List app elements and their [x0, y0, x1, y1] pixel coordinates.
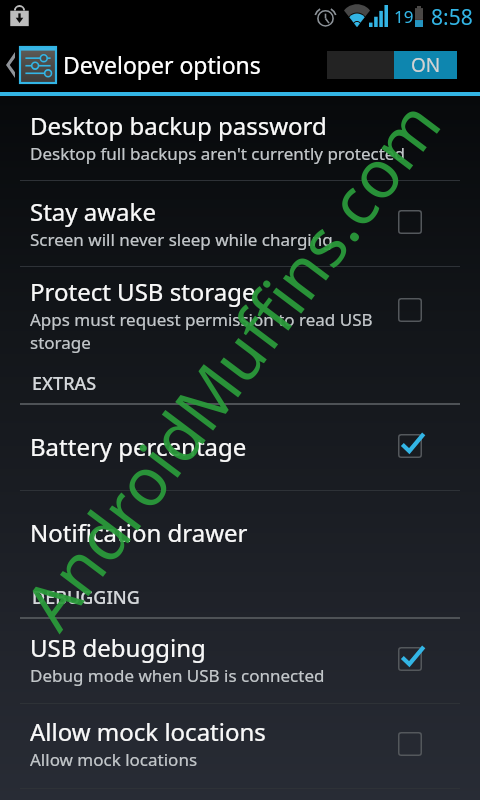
button[interactable]: Notification drawer — [0, 491, 480, 570]
button[interactable]: Allow mock locations — [370, 704, 450, 788]
staticText: 19 — [394, 5, 414, 28]
button[interactable]: Protect USB storage — [0, 267, 480, 356]
button[interactable]: Navigate up — [0, 33, 60, 92]
button[interactable]: Battery percentage — [370, 405, 450, 490]
staticText: USB debugging — [30, 631, 206, 664]
staticText: Screen will never sleep while charging — [30, 228, 333, 251]
other: Download in progress — [9, 5, 30, 27]
staticText: Allow mock locations — [30, 748, 198, 771]
staticText: Notification drawer — [30, 516, 248, 549]
staticText: Stay awake — [30, 195, 156, 228]
staticText: EXTRAS — [32, 371, 97, 396]
staticText: 8:58 — [431, 3, 473, 32]
staticText: Protect USB storage — [30, 275, 256, 308]
button[interactable]: Allow mock locations — [0, 704, 480, 788]
staticText: AndroidMuffins.com — [3, 82, 460, 647]
staticText: Allow mock locations — [30, 715, 266, 748]
button[interactable]: Stay awake — [370, 181, 450, 266]
staticText: Desktop backup password — [30, 109, 327, 142]
button[interactable]: USB debugging — [0, 619, 480, 703]
button[interactable]: Desktop backup password — [0, 96, 480, 180]
staticText: Developer options — [63, 49, 261, 80]
staticText: Apps must request permission to read USB… — [30, 308, 402, 354]
button[interactable]: Protect USB storage — [370, 267, 450, 356]
staticText: Battery percentage — [30, 430, 247, 463]
button[interactable]: Stay awake — [0, 181, 480, 266]
button[interactable]: Developer options on — [327, 51, 457, 79]
staticText: Debug mode when USB is connected — [30, 664, 325, 687]
button[interactable]: Battery percentage — [0, 405, 480, 490]
staticText: Desktop full backups aren't currently pr… — [30, 142, 405, 165]
button[interactable]: USB debugging — [370, 619, 450, 703]
staticText: ON — [411, 52, 441, 78]
staticText: DEBUGGING — [32, 585, 140, 610]
